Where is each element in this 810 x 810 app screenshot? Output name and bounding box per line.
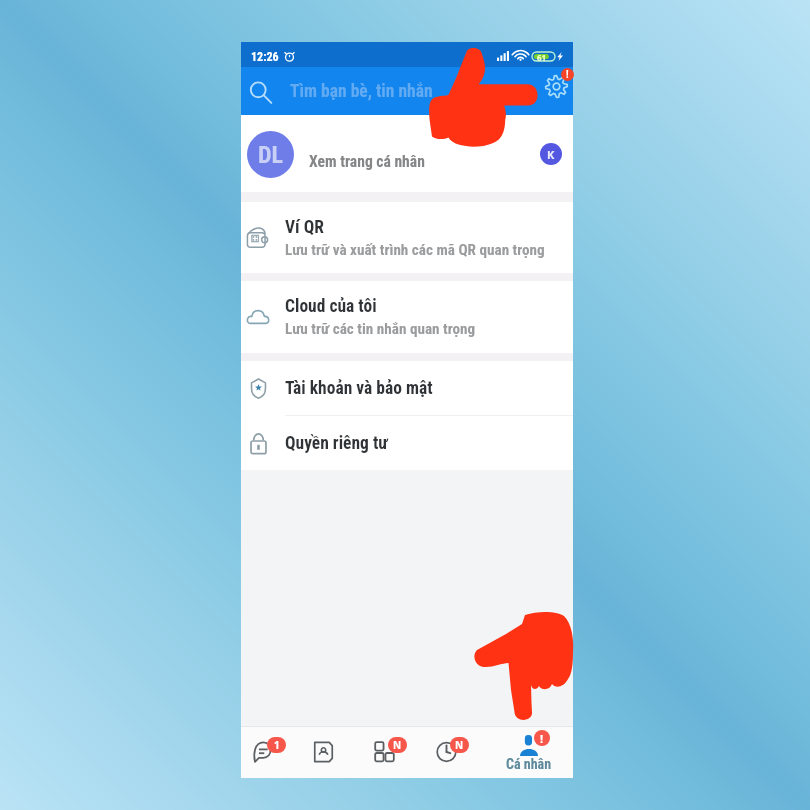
button[interactable]: Contacts — [301, 727, 345, 778]
staticText: Tài khoản và bảo mật — [285, 378, 433, 399]
button[interactable]: Settings — [540, 70, 572, 102]
button[interactable]: Discover — [362, 727, 406, 778]
button[interactable]: ! — [501, 727, 557, 778]
staticText: ! — [566, 69, 569, 81]
button[interactable]: Diary — [424, 727, 468, 778]
button[interactable]: Tài khoản và bảo mật — [241, 361, 573, 415]
staticText: K — [547, 147, 555, 162]
staticText: ! — [540, 731, 544, 746]
staticText: Cá nhân — [506, 756, 552, 772]
button[interactable]: Quyền riêng tư — [241, 416, 573, 470]
staticText: N — [455, 738, 464, 752]
button[interactable]: Chat — [241, 727, 285, 778]
staticText: 12:26 — [251, 50, 279, 64]
staticText: DL — [258, 141, 284, 169]
staticText: Lưu trữ và xuất trình các mã QR quan trọ… — [285, 241, 545, 259]
staticText: Xem trang cá nhân — [309, 153, 425, 171]
staticText: Lưu trữ các tin nhắn quan trọng — [285, 320, 476, 338]
staticText: Ví QR — [285, 217, 324, 238]
staticText: Quyền riêng tư — [285, 433, 388, 454]
staticText: Cloud của tôi — [285, 296, 377, 317]
button[interactable]: Cloud của tôi — [241, 281, 573, 353]
staticText: 61 — [537, 52, 547, 61]
button[interactable]: Ví QR — [241, 202, 573, 273]
button[interactable]: Search — [241, 67, 573, 115]
staticText: Tìm bạn bè, tin nhắn — [290, 81, 433, 102]
staticText: 1 — [274, 738, 280, 752]
staticText: N — [393, 738, 402, 752]
other: Search — [249, 81, 270, 102]
button[interactable]: K — [540, 143, 562, 165]
button[interactable]: DL — [241, 115, 573, 192]
